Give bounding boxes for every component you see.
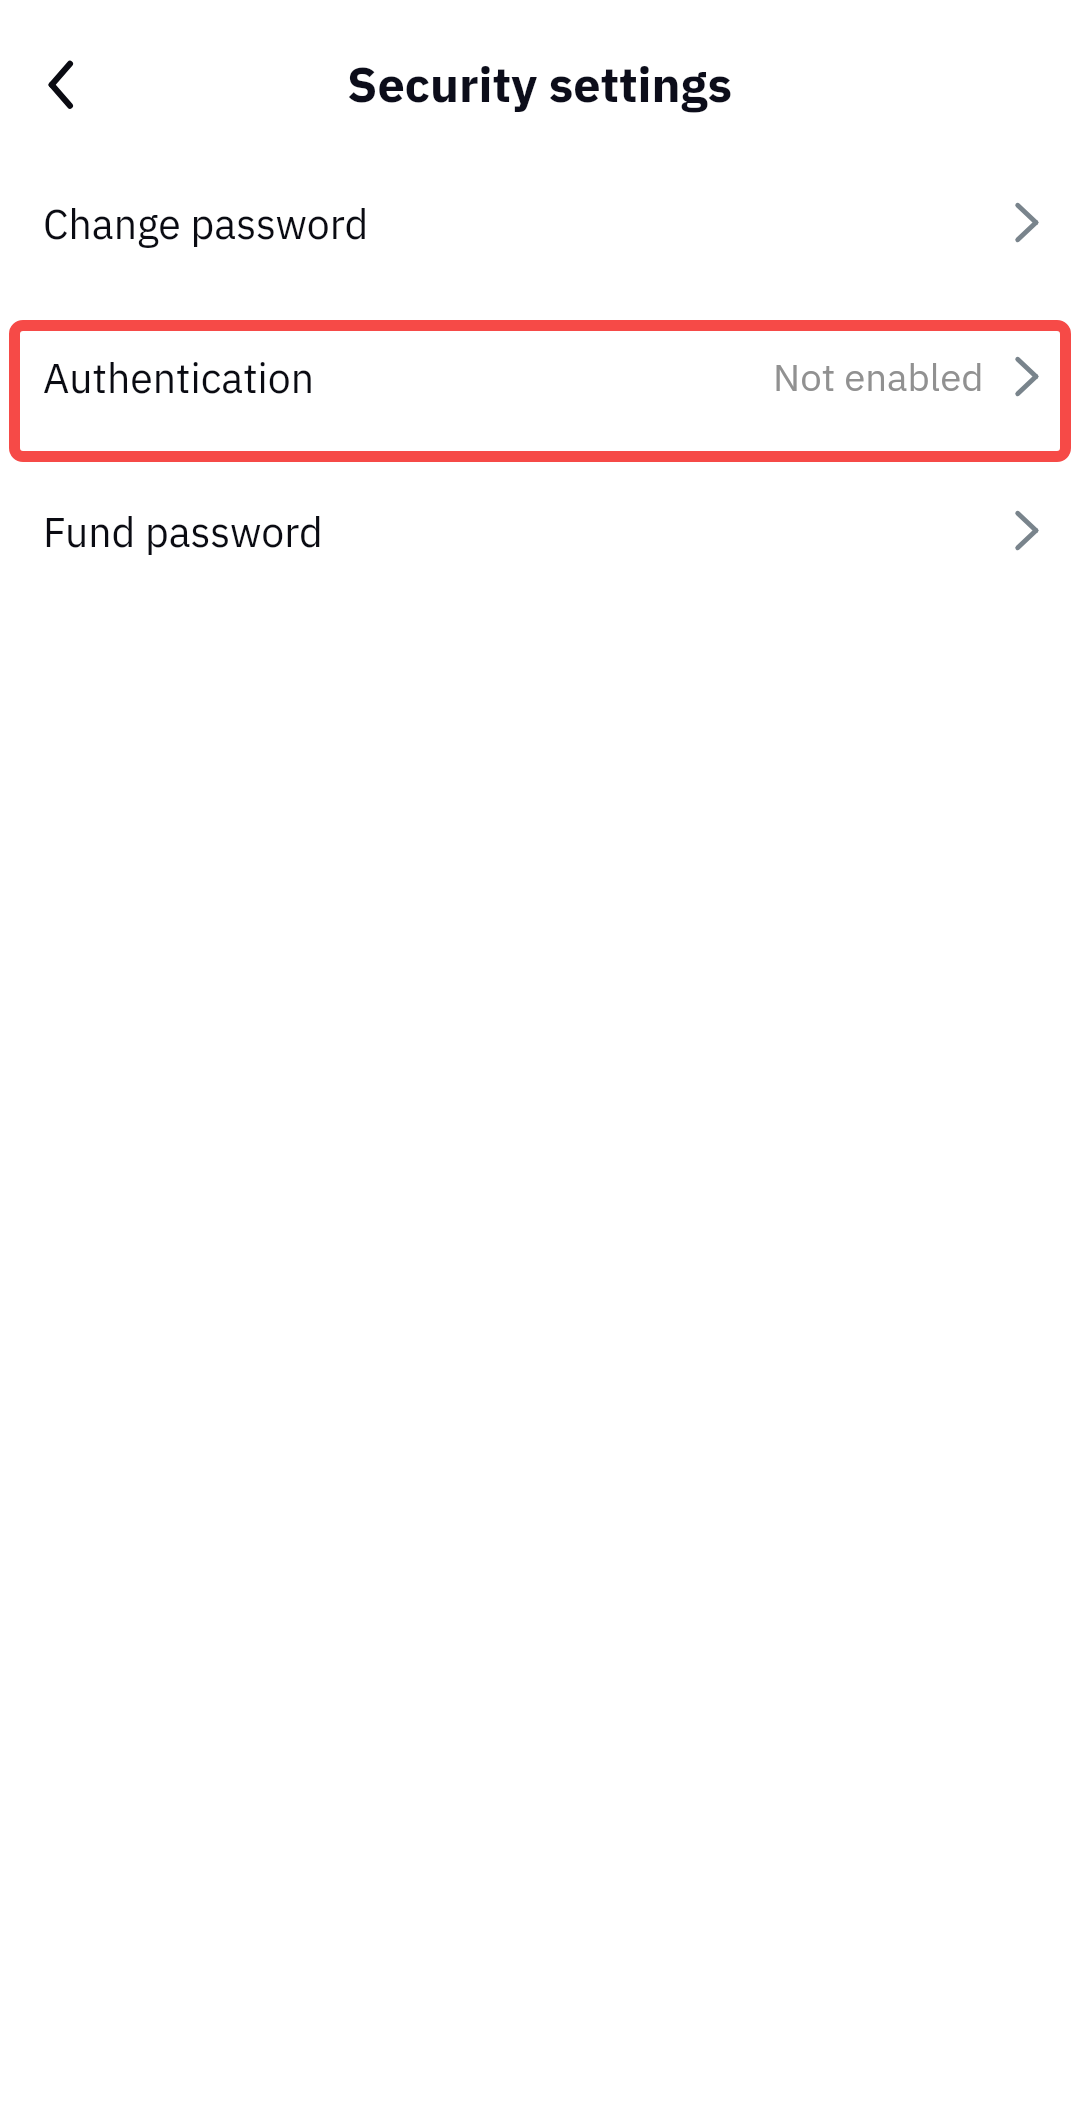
button[interactable]: Change password: [0, 146, 1080, 300]
staticText: Not enabled: [773, 352, 984, 402]
button[interactable]: Fund password: [0, 454, 1080, 608]
button[interactable]: Authentication: [0, 300, 1080, 454]
button[interactable]: Back: [8, 38, 96, 132]
staticText: Fund password: [43, 505, 323, 558]
staticText: Security settings: [347, 52, 732, 115]
staticText: Change password: [43, 197, 369, 250]
staticText: Authentication: [43, 351, 315, 404]
